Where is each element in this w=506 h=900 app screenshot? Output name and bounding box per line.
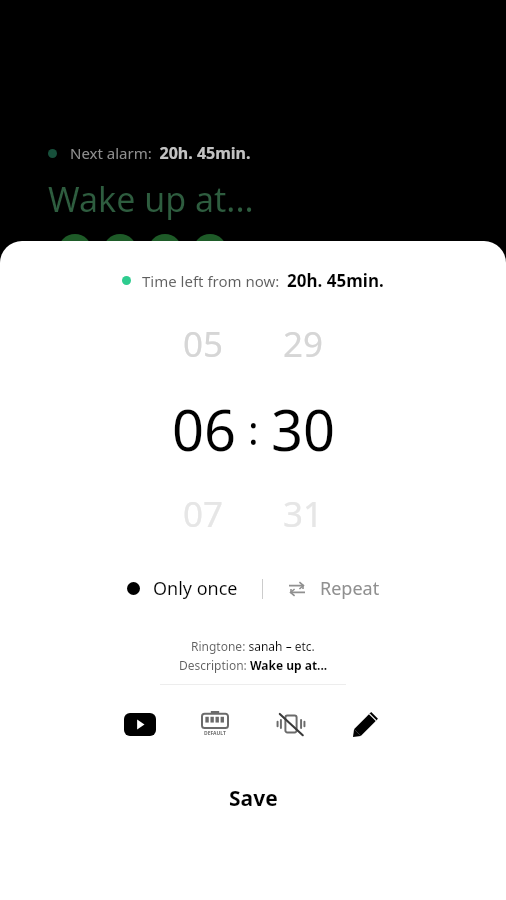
button[interactable]: 30	[259, 391, 347, 467]
button[interactable]: 05	[159, 320, 247, 368]
staticText: Wake up at...	[48, 176, 254, 222]
staticText: :	[248, 402, 259, 456]
button[interactable]: YouTube ringtone	[118, 702, 162, 746]
button[interactable]: Repeat	[281, 570, 386, 607]
staticText: Next alarm: 20h. 45min.	[70, 142, 251, 164]
staticText: 05	[183, 320, 224, 368]
button[interactable]: Edit	[344, 702, 388, 746]
staticText: Ringtone: sanah – etc.	[191, 638, 315, 654]
button[interactable]: 06	[160, 391, 248, 467]
staticText: Repeat	[320, 576, 380, 601]
button[interactable]: 07	[159, 490, 247, 538]
staticText: 29	[283, 320, 324, 368]
staticText: Description: Wake up at...	[179, 657, 328, 673]
staticText: Only once	[153, 576, 238, 601]
staticText: Time left from now: 20h. 45min.	[142, 269, 384, 292]
button[interactable]: Default alarm sound	[193, 702, 237, 746]
staticText: 30	[271, 391, 336, 467]
staticText: DEFAULT	[204, 730, 226, 737]
staticText: 07	[183, 490, 224, 538]
button[interactable]: Save	[189, 776, 318, 821]
staticText: 31	[283, 490, 324, 538]
button[interactable]: Only once	[121, 570, 244, 607]
staticText: Save	[229, 784, 278, 813]
button[interactable]: 31	[259, 490, 347, 538]
button[interactable]: 29	[259, 320, 347, 368]
staticText: 06	[172, 391, 237, 467]
button[interactable]: Vibration off	[269, 702, 313, 746]
